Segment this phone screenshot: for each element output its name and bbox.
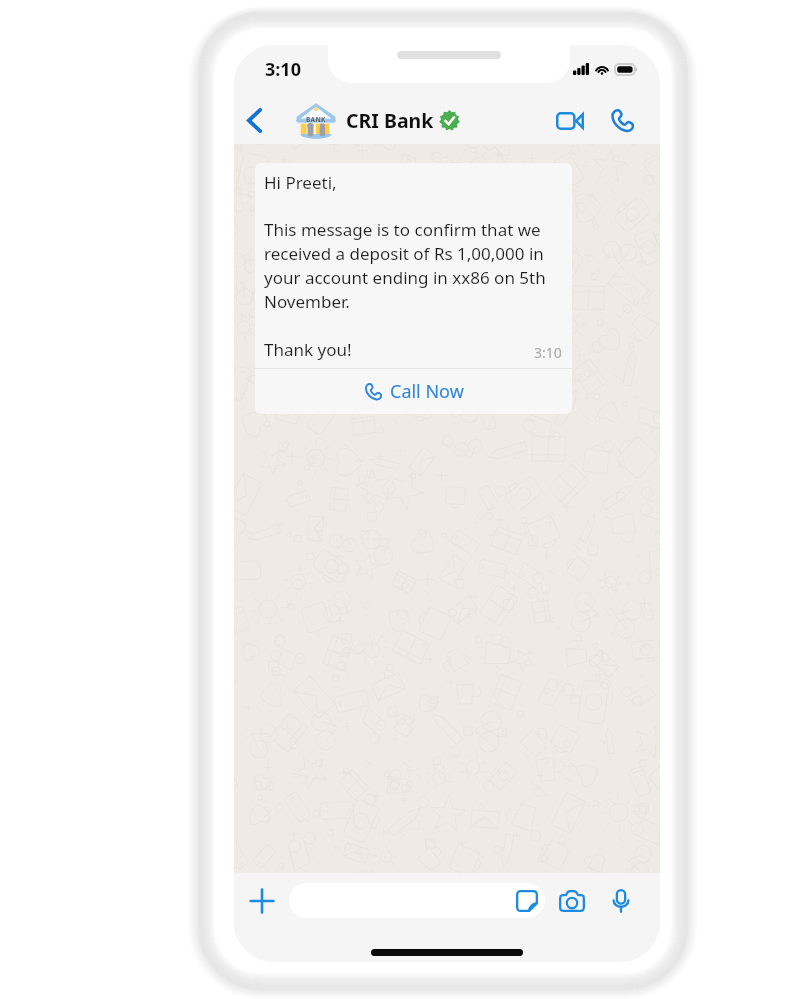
button[interactable]: Voice message (606, 886, 636, 916)
button[interactable]: Call Now (255, 369, 572, 414)
button[interactable]: Back (236, 97, 272, 144)
button[interactable]: Message input field (289, 883, 545, 918)
button[interactable]: Video call (547, 98, 593, 144)
button[interactable]: Voice call (599, 98, 645, 144)
staticText: 3:10 (265, 57, 301, 82)
button[interactable]: Attach (245, 884, 279, 918)
button[interactable]: BANK (296, 97, 460, 144)
staticText: BANK (306, 115, 326, 124)
staticText: CRI Bank (346, 107, 434, 134)
button[interactable]: Camera (554, 883, 590, 919)
staticText: 3:10 (534, 343, 562, 362)
staticText: Hi Preeti, This message is to confirm th… (264, 171, 562, 361)
staticText: Call Now (390, 379, 464, 404)
